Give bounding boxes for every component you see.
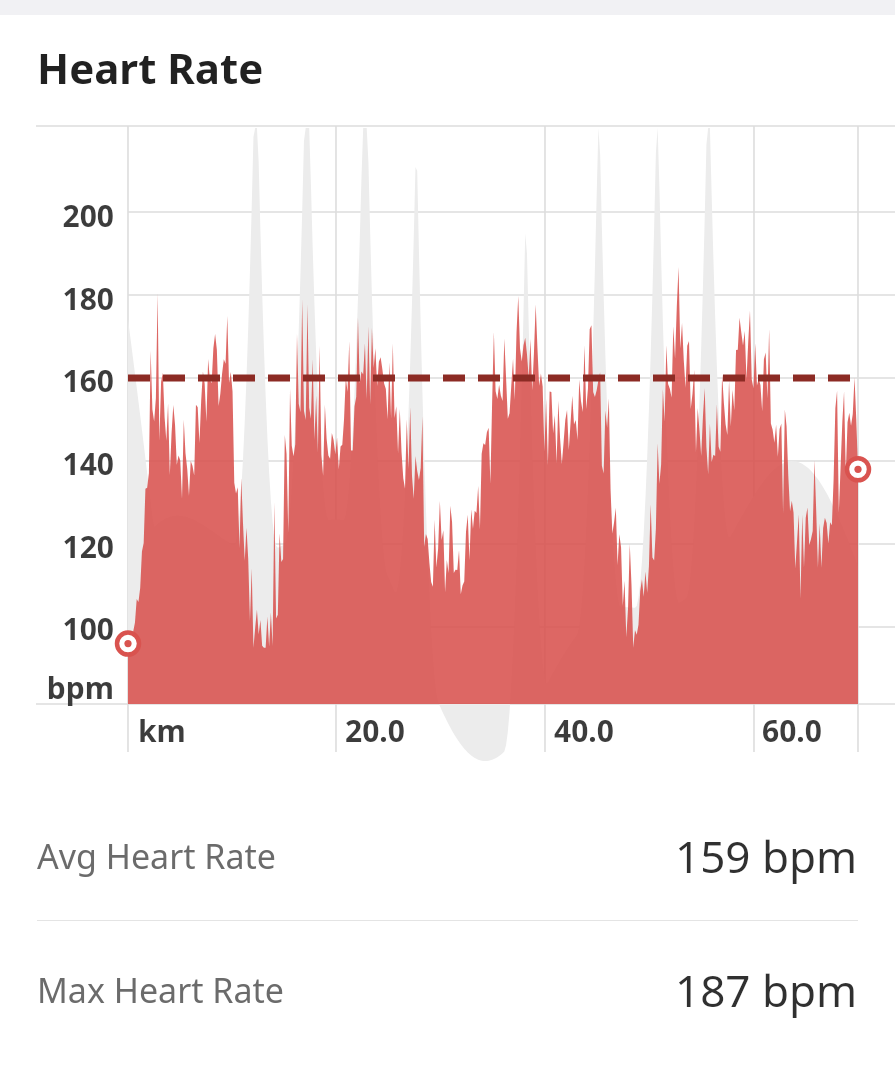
staticText: 160	[46, 360, 114, 401]
staticText: Max Heart Rate	[37, 967, 285, 1013]
button[interactable]: Avg Heart Rate	[0, 825, 895, 887]
staticText: 200	[46, 195, 114, 236]
staticText: 100	[46, 608, 114, 649]
staticText: 180	[46, 278, 114, 319]
staticText: km	[138, 710, 186, 751]
button[interactable]: Max Heart Rate	[0, 959, 895, 1021]
staticText: 187 bpm	[675, 960, 858, 1020]
staticText: 40.0	[554, 710, 614, 751]
staticText: 120	[46, 526, 114, 567]
staticText: 140	[46, 443, 114, 484]
staticText: 20.0	[345, 710, 405, 751]
button[interactable]: Heart rate chart	[0, 120, 895, 755]
staticText: 60.0	[762, 710, 822, 751]
staticText: Heart Rate	[37, 39, 264, 96]
staticText: bpm	[46, 667, 114, 708]
staticText: Avg Heart Rate	[37, 833, 277, 879]
staticText: 159 bpm	[675, 826, 858, 886]
